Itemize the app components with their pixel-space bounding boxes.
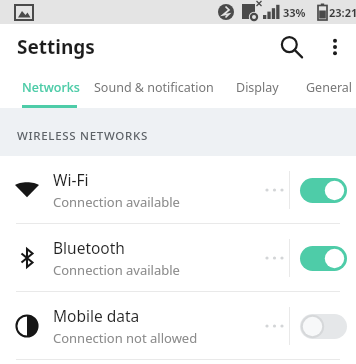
staticText: Networks <box>22 79 80 96</box>
staticText: WIRELESS NETWORKS <box>17 128 149 144</box>
staticText: Connection not allowed <box>53 329 198 347</box>
button[interactable]: Mobile data off <box>290 300 356 352</box>
staticText: 33% <box>283 5 306 20</box>
staticText: Sound & notification <box>94 79 214 96</box>
button[interactable]: Wi-Fi on <box>290 164 356 216</box>
button[interactable]: Bluetooth on <box>290 232 356 284</box>
staticText: Settings <box>17 34 95 60</box>
staticText: 23:21 <box>329 5 356 20</box>
button[interactable]: Search <box>270 26 312 68</box>
button[interactable]: Wi-Fi options <box>257 169 289 211</box>
button[interactable]: Wi-Fi <box>0 156 356 223</box>
button[interactable]: General <box>306 69 353 105</box>
button[interactable]: Bluetooth <box>0 224 356 291</box>
staticText: Mobile data <box>53 305 140 326</box>
button[interactable]: Mobile data <box>0 292 356 359</box>
staticText: Connection available <box>53 193 180 211</box>
button[interactable]: Display <box>236 69 279 105</box>
button[interactable]: Mobile data options <box>257 305 289 347</box>
staticText: General <box>306 79 353 96</box>
button[interactable]: Bluetooth options <box>257 237 289 279</box>
staticText: Display <box>236 79 279 96</box>
staticText: Wi-Fi <box>53 169 89 190</box>
staticText: Bluetooth <box>53 237 125 258</box>
button[interactable]: Networks <box>22 69 80 105</box>
button[interactable]: More options <box>314 26 356 68</box>
button[interactable]: Sound & notification <box>94 69 214 105</box>
staticText: Connection available <box>53 261 180 279</box>
